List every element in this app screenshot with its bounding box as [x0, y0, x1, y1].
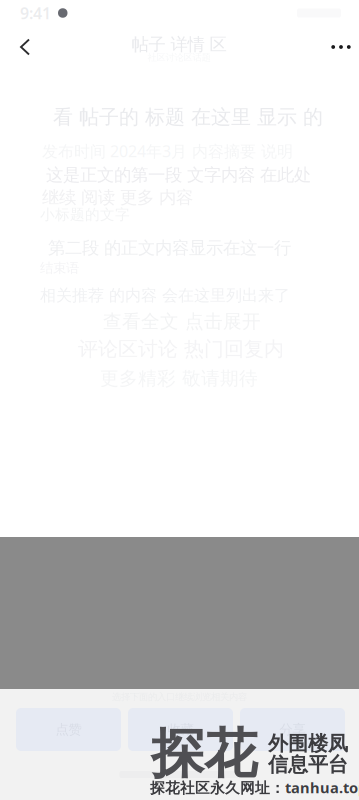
- staticText: 评论区讨论 热门回复内: [78, 337, 284, 361]
- button[interactable]: 收藏: [128, 708, 233, 751]
- staticText: 帖子 详情 区: [131, 34, 226, 55]
- staticText: 外围楼凤: [268, 731, 348, 756]
- staticText: 探花社区永久网址：tanhua.top: [150, 778, 359, 797]
- staticText: 9:41: [20, 2, 51, 24]
- staticText: 分享: [279, 721, 305, 738]
- button[interactable]: 分享: [240, 708, 345, 751]
- staticText: 点赞: [55, 721, 81, 738]
- staticText: 继续 阅读 更多 内容: [42, 187, 198, 208]
- staticText: 收藏: [167, 721, 193, 738]
- button[interactable]: More options: [324, 26, 358, 68]
- staticText: 第二段 的正文内容显示在这一行: [48, 237, 291, 259]
- staticText: 信息平台: [268, 752, 348, 777]
- staticText: 更多精彩 敬请期待: [100, 367, 258, 390]
- staticText: 相关推荐 的内容 会在这里列出来了: [40, 286, 290, 305]
- staticText: 查看全文 点击展开: [103, 310, 261, 333]
- staticText: 这是正文的第一段 文字内容 在此处: [46, 164, 311, 186]
- staticText: 探花: [151, 721, 257, 787]
- staticText: 发布时间 2024年3月 内容摘要 说明: [42, 140, 293, 162]
- staticText: 小标题的文字: [40, 205, 130, 223]
- button[interactable]: Back: [8, 26, 42, 68]
- staticText: 看 帖子的 标题 在这里 显示 的: [53, 105, 323, 129]
- staticText: 结束语: [40, 260, 79, 276]
